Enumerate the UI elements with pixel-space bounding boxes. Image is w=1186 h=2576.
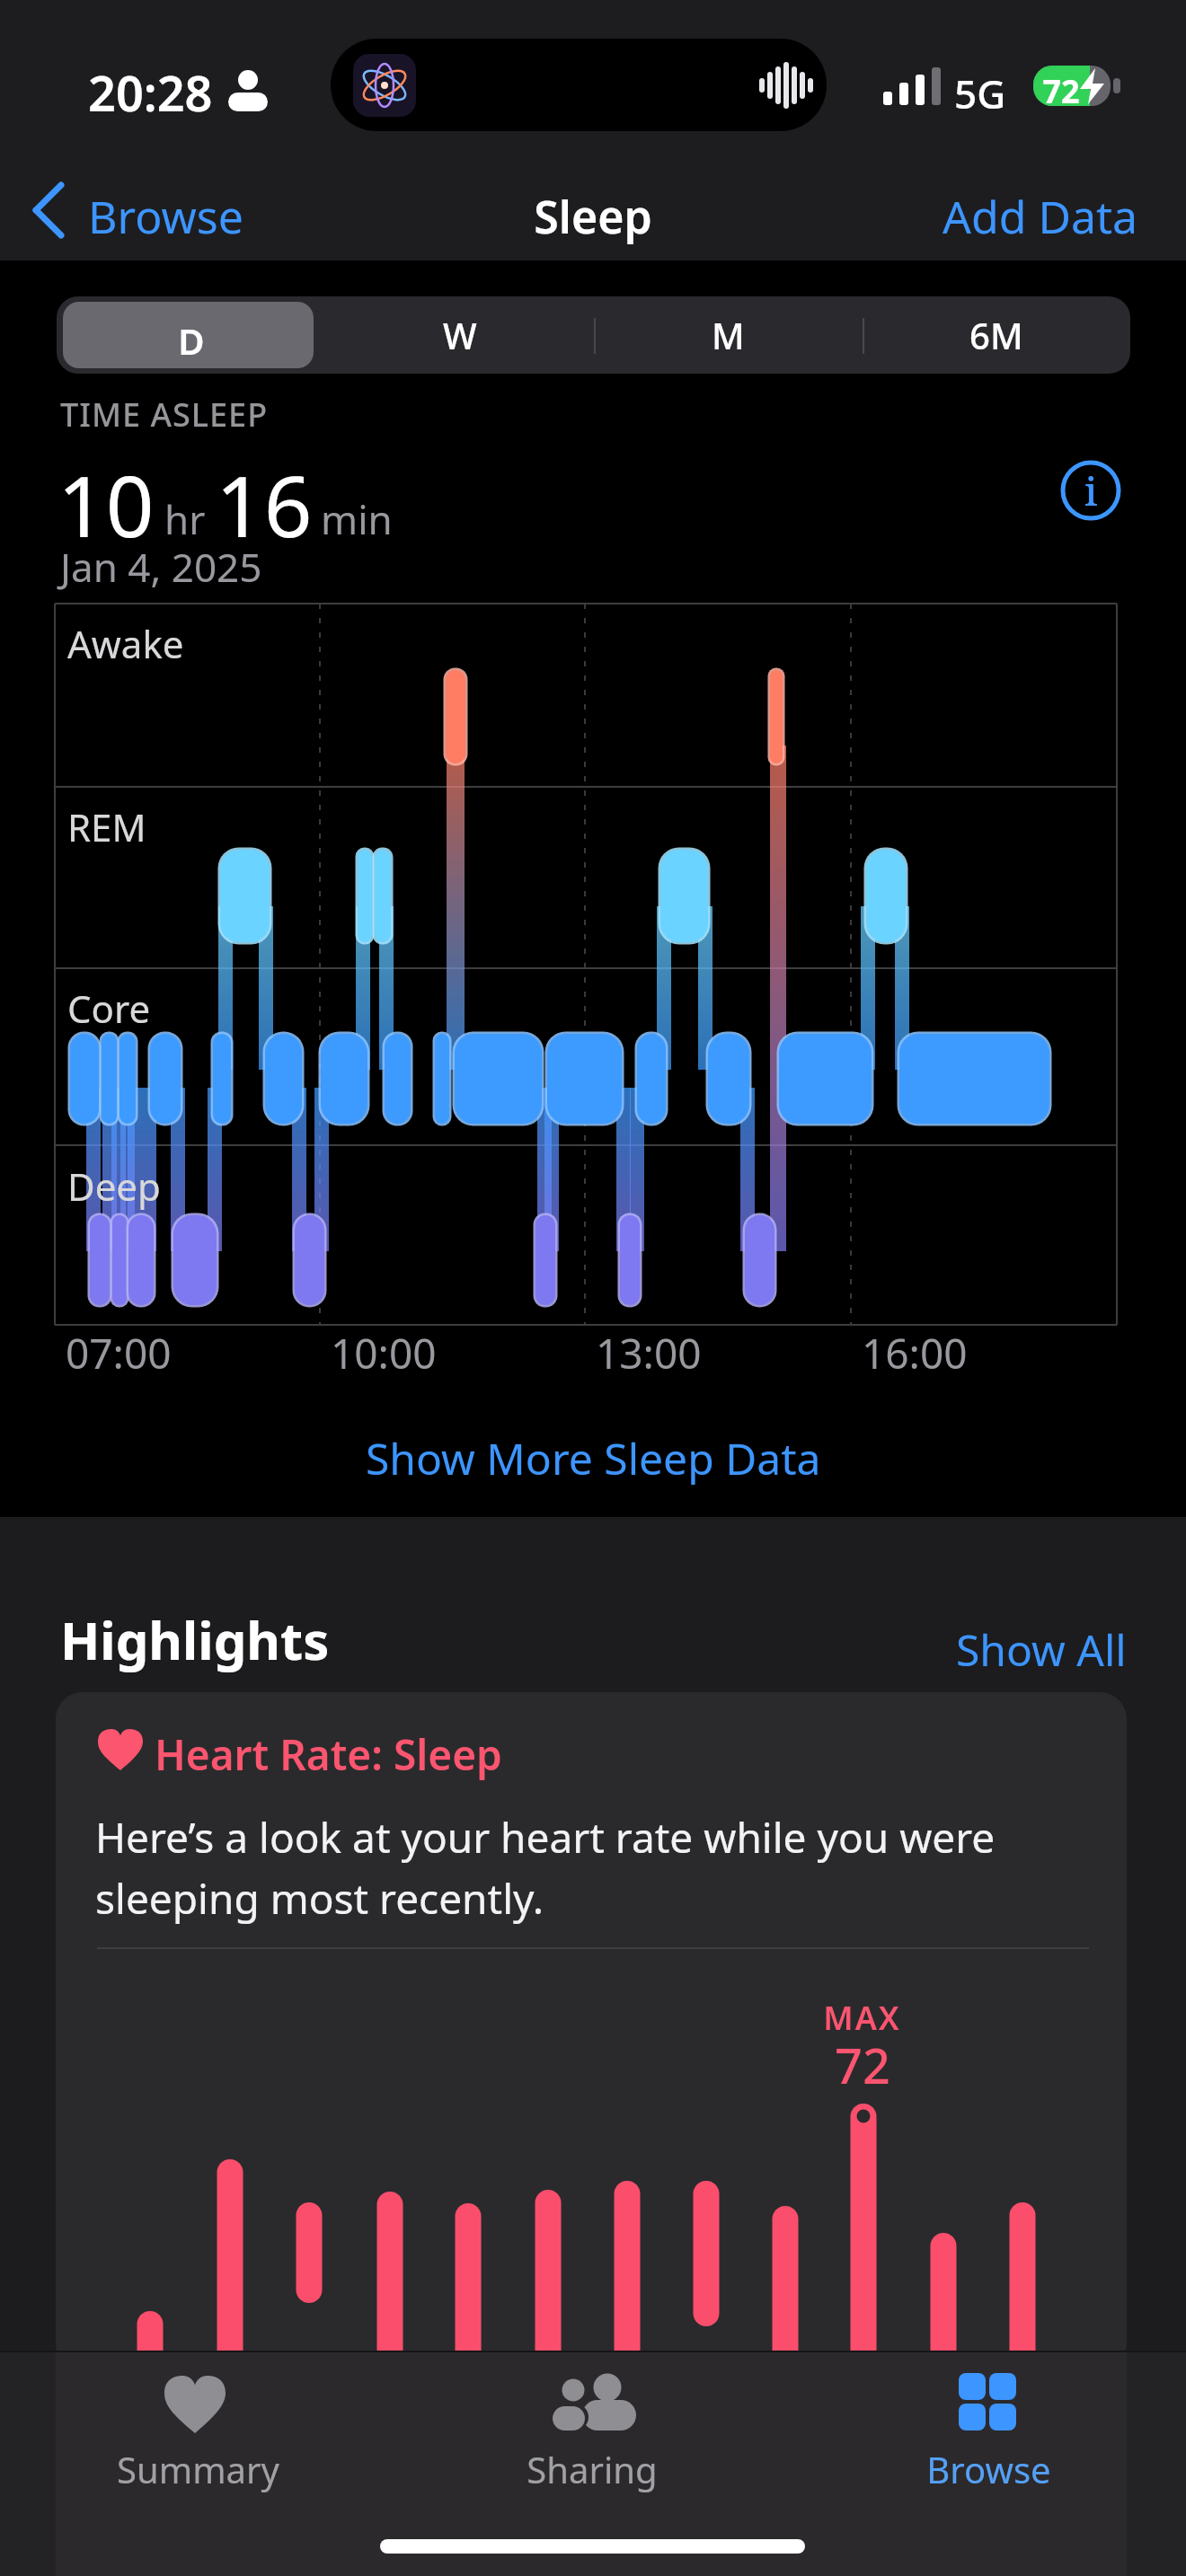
staticText: Deep (67, 1160, 161, 1212)
staticText: Core (67, 983, 151, 1034)
staticText: 5G (954, 66, 1006, 120)
staticText: min (321, 492, 393, 546)
button[interactable]: M (594, 296, 863, 374)
button[interactable]: Show More Sleep Data (341, 1426, 845, 1489)
staticText: Sleep (534, 186, 652, 247)
staticText: 10:00 (331, 1325, 437, 1381)
button[interactable] (485, 2353, 701, 2506)
button[interactable] (934, 172, 1141, 248)
button[interactable] (90, 2353, 305, 2506)
button[interactable] (881, 2353, 1096, 2506)
button[interactable]: i (1060, 460, 1121, 521)
staticText: 10 (58, 447, 155, 562)
staticText: Jan 4, 2025 (60, 540, 262, 594)
button[interactable]: 6M (863, 296, 1130, 374)
staticText: 16 (216, 447, 313, 562)
staticText: TIME ASLEEP (60, 393, 269, 437)
staticText: 20:28 (88, 59, 213, 126)
staticText: D (178, 316, 205, 365)
staticText: Sharing (527, 2445, 658, 2493)
staticText: MAX (823, 1996, 901, 2040)
button[interactable]: Show All (934, 1611, 1132, 1674)
staticText: REM (67, 801, 146, 852)
button[interactable] (63, 302, 314, 368)
button[interactable] (27, 172, 252, 248)
staticText: 72 (1042, 69, 1080, 113)
staticText: Browse (926, 2445, 1051, 2493)
staticText: 6M (969, 311, 1023, 359)
staticText: hr (164, 492, 206, 546)
staticText: Show More Sleep Data (366, 1429, 821, 1487)
staticText: 13:00 (596, 1325, 702, 1381)
staticText: 72 (835, 2032, 890, 2098)
staticText: Heart Rate: Sleep (155, 1726, 502, 1783)
staticText: 07:00 (66, 1325, 172, 1381)
button[interactable] (56, 1692, 1127, 2371)
staticText: Browse (88, 186, 243, 247)
staticText: Summary (117, 2445, 279, 2493)
staticText: Highlights (60, 1604, 330, 1675)
staticText: Add Data (943, 186, 1138, 247)
staticText: W (443, 311, 477, 359)
staticText: i (1084, 463, 1098, 517)
staticText: M (712, 311, 745, 359)
staticText: Awake (67, 618, 184, 669)
staticText: Show All (956, 1620, 1127, 1679)
staticText: Here’s a look at your heart rate while y… (95, 1809, 996, 1926)
button[interactable]: W (325, 296, 594, 374)
staticText: 16:00 (862, 1325, 968, 1381)
